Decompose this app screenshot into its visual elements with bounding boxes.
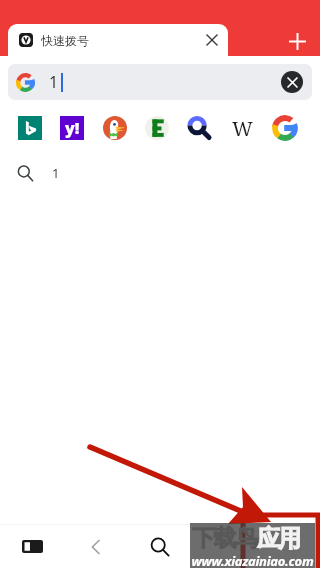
button[interactable]: Bing	[12, 110, 48, 146]
button[interactable]: Close tab	[201, 29, 223, 51]
button[interactable]: Clear text	[281, 71, 303, 93]
button[interactable]: New tab	[281, 25, 313, 57]
button[interactable]: Panels	[0, 525, 64, 568]
staticText: 快速拨号	[41, 33, 89, 48]
staticText: 1	[49, 71, 59, 93]
button[interactable]: Qwant	[181, 110, 217, 146]
button[interactable]: Search	[128, 525, 192, 568]
button[interactable]: 1	[8, 64, 312, 100]
button[interactable]: DuckDuckGo	[97, 110, 133, 146]
button[interactable]: 快速拨号	[8, 24, 228, 56]
staticText: 1	[52, 164, 60, 182]
staticText: y!	[65, 117, 80, 139]
button[interactable]: 1	[0, 155, 320, 191]
button[interactable]: Yahoo	[54, 110, 90, 146]
button[interactable]: Google	[267, 110, 303, 146]
button[interactable]: Back	[64, 525, 128, 568]
staticText: www.xiazainiao.com	[190, 552, 315, 568]
staticText: 应用	[257, 524, 301, 553]
button[interactable]: Wikipedia	[224, 110, 260, 146]
button[interactable]: Ecosia	[139, 110, 175, 146]
staticText: W	[232, 115, 253, 142]
staticText: 下载鸟	[192, 524, 257, 553]
